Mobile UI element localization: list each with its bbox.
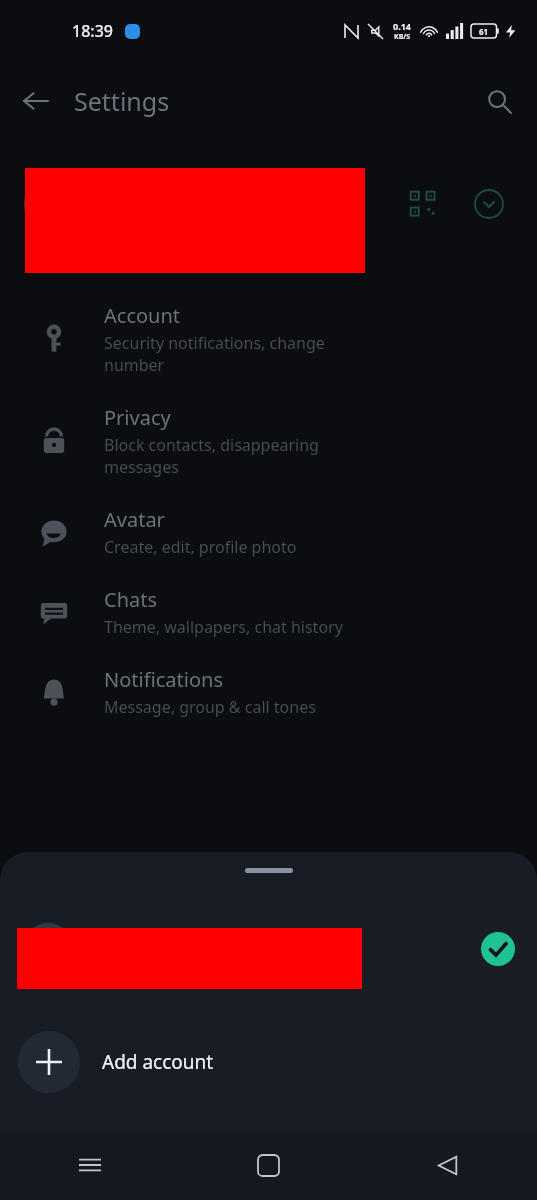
staticText: Theme, wallpapers, chat history [104, 616, 343, 638]
button[interactable]: Chats [0, 572, 537, 652]
staticText: Block contacts, disappearing messages [104, 434, 319, 478]
button[interactable]: Add account [0, 1018, 537, 1106]
button[interactable]: Expand accounts [465, 180, 513, 228]
staticText: Privacy [104, 404, 171, 431]
button[interactable]: Account [0, 288, 537, 390]
staticText: Chats [104, 586, 158, 613]
button[interactable]: QR code [399, 180, 447, 228]
staticText: 18:39 [72, 20, 113, 42]
button[interactable]: Search [475, 77, 523, 125]
staticText: Security notifications, change number [104, 332, 325, 376]
button[interactable]: Back [358, 1130, 537, 1200]
button[interactable]: Home [179, 1130, 358, 1200]
staticText: 0.14 [393, 20, 411, 32]
staticText: Message, group & call tones [104, 696, 316, 718]
button[interactable]: Recent apps [0, 1130, 179, 1200]
button[interactable]: Privacy [0, 390, 537, 492]
staticText: Account [104, 302, 181, 329]
staticText: Notifications [104, 666, 223, 693]
staticText: KB/S [394, 32, 411, 42]
button[interactable]: Avatar [0, 492, 537, 572]
button[interactable]: QR code [0, 140, 537, 268]
staticText: Add account [102, 1049, 214, 1075]
staticText: Settings [74, 84, 170, 118]
staticText: Avatar [104, 506, 165, 533]
staticText: 61 [479, 26, 489, 37]
staticText: Create, edit, profile photo [104, 536, 297, 558]
button[interactable]: Back [12, 77, 60, 125]
button[interactable] [0, 906, 537, 992]
button[interactable]: Notifications [0, 652, 537, 732]
